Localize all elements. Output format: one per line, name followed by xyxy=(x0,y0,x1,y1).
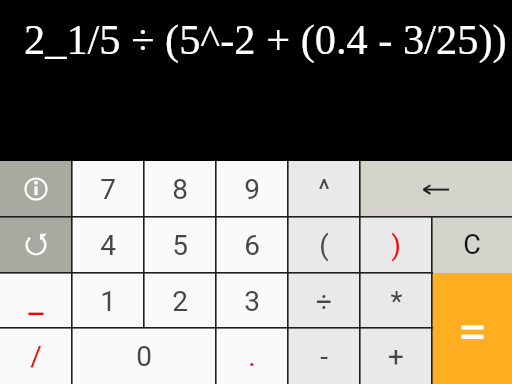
button[interactable]: Equals xyxy=(432,273,512,384)
button[interactable]: C xyxy=(432,217,512,273)
button[interactable]: 0 xyxy=(72,328,216,384)
staticText: 1 xyxy=(100,285,116,318)
staticText: ÷ xyxy=(316,285,332,318)
staticText: 6 xyxy=(244,229,260,262)
staticText: + xyxy=(388,340,404,373)
staticText: ) xyxy=(391,229,401,262)
button[interactable]: 6 xyxy=(216,217,288,273)
staticText: * xyxy=(390,285,403,318)
staticText: C xyxy=(463,229,481,261)
staticText: 8 xyxy=(172,173,188,206)
button[interactable]: 9 xyxy=(216,161,288,217)
button[interactable]: ^ xyxy=(288,161,360,217)
staticText: . xyxy=(248,340,256,373)
button[interactable]: ) xyxy=(360,217,432,273)
button[interactable]: Backspace xyxy=(360,161,512,217)
button[interactable]: 2 xyxy=(144,273,216,329)
staticText: - xyxy=(320,340,328,373)
button[interactable]: . xyxy=(216,328,288,384)
button[interactable]: 5 xyxy=(144,217,216,273)
button[interactable]: 4 xyxy=(72,217,144,273)
staticText: ^ xyxy=(318,173,330,206)
staticText: 4 xyxy=(100,229,116,262)
staticText: 0 xyxy=(136,340,152,373)
staticText: 2_1/5 ÷ (5^-2 + (0.4 - 3/25)) xyxy=(24,16,507,63)
button[interactable]: 3 xyxy=(216,273,288,329)
button[interactable]: 7 xyxy=(72,161,144,217)
button[interactable]: 1 xyxy=(72,273,144,329)
staticText: ( xyxy=(319,229,329,262)
button[interactable]: - xyxy=(288,328,360,384)
button[interactable]: ÷ xyxy=(288,273,360,329)
button[interactable]: / xyxy=(0,328,72,384)
staticText: 2 xyxy=(172,285,188,318)
button[interactable]: Undo xyxy=(0,217,72,273)
staticText: _ xyxy=(28,281,44,321)
button[interactable]: Info xyxy=(0,161,72,217)
button[interactable]: _ xyxy=(0,273,72,329)
button[interactable]: 8 xyxy=(144,161,216,217)
staticText: 5 xyxy=(172,229,188,262)
button[interactable]: + xyxy=(360,328,432,384)
staticText: / xyxy=(30,340,42,373)
staticText: 7 xyxy=(100,173,116,206)
button[interactable]: ( xyxy=(288,217,360,273)
staticText: 9 xyxy=(244,173,260,206)
staticText: 3 xyxy=(244,285,260,318)
button[interactable]: * xyxy=(360,273,432,329)
